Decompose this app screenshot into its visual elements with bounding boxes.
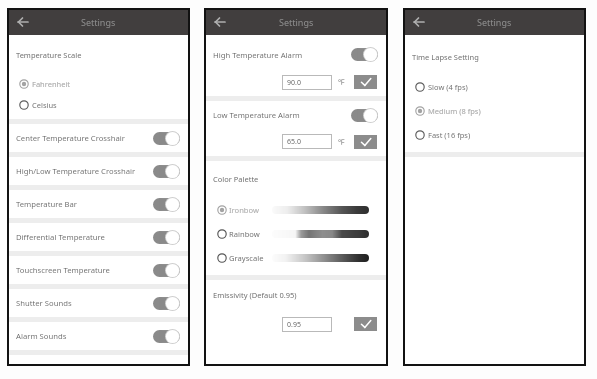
button[interactable]: Touchscreen Temperature <box>7 256 190 284</box>
button[interactable]: Rainbow <box>204 222 388 246</box>
button[interactable]: Shutter Sounds <box>7 289 190 317</box>
button[interactable]: Ironbow <box>204 197 388 222</box>
staticText: ℉ <box>338 77 345 87</box>
button[interactable]: Medium (8 fps) <box>403 99 586 123</box>
button[interactable]: Back <box>213 15 227 29</box>
button[interactable]: 65.0 <box>282 134 332 149</box>
staticText: Center Temperature Crosshair <box>16 133 153 143</box>
button[interactable]: 0.95 <box>282 317 332 332</box>
staticText: Rainbow <box>229 229 272 239</box>
staticText: High Temperature Alarm <box>213 50 351 60</box>
staticText: Temperature Scale <box>16 50 82 60</box>
staticText: Alarm Sounds <box>16 331 153 341</box>
staticText: Time Lapse Setting <box>412 52 479 62</box>
button[interactable]: Temperature Bar <box>7 190 190 218</box>
button[interactable]: Grayscale <box>204 243 388 272</box>
button[interactable]: Low Temperature Alarm <box>204 101 388 129</box>
staticText: Temperature Bar <box>16 199 153 209</box>
staticText: ℉ <box>338 137 345 147</box>
staticText: Grayscale <box>229 253 272 263</box>
staticText: 0.95 <box>287 320 301 330</box>
staticText: Settings <box>81 16 116 28</box>
staticText: Differential Temperature <box>16 232 153 242</box>
staticText: Celsius <box>32 100 57 110</box>
staticText: Low Temperature Alarm <box>213 110 351 120</box>
button[interactable]: High Temperature Alarm <box>204 35 388 74</box>
staticText: Touchscreen Temperature <box>16 265 153 275</box>
staticText: Medium (8 fps) <box>428 106 481 116</box>
button[interactable]: Fahrenheit <box>7 72 190 96</box>
staticText: Shutter Sounds <box>16 298 153 308</box>
button[interactable]: High/Low Temperature Crosshair <box>7 157 190 185</box>
button[interactable]: Back <box>16 15 30 29</box>
button[interactable]: Confirm <box>354 317 377 331</box>
staticText: High/Low Temperature Crosshair <box>16 166 153 176</box>
button[interactable]: Celsius <box>7 94 190 115</box>
staticText: Emissivity (Default 0.95) <box>213 290 297 300</box>
button[interactable]: Alarm Sounds <box>7 322 190 350</box>
staticText: Slow (4 fps) <box>428 82 468 92</box>
button[interactable]: Confirm <box>354 75 377 89</box>
staticText: Fahrenheit <box>32 79 71 89</box>
staticText: Settings <box>279 16 314 28</box>
button[interactable]: Confirm <box>354 135 377 149</box>
button[interactable]: Fast (16 fps) <box>403 120 586 149</box>
button[interactable]: Slow (4 fps) <box>403 76 586 97</box>
staticText: Color Palette <box>213 174 259 184</box>
staticText: Fast (16 fps) <box>428 130 471 140</box>
button[interactable]: Differential Temperature <box>7 223 190 251</box>
button[interactable]: 90.0 <box>282 75 332 90</box>
staticText: 90.0 <box>287 78 301 88</box>
button[interactable]: Center Temperature Crosshair <box>7 124 190 152</box>
staticText: Ironbow <box>229 205 272 215</box>
staticText: 65.0 <box>287 137 301 147</box>
staticText: Settings <box>477 16 512 28</box>
button[interactable]: Back <box>412 15 426 29</box>
